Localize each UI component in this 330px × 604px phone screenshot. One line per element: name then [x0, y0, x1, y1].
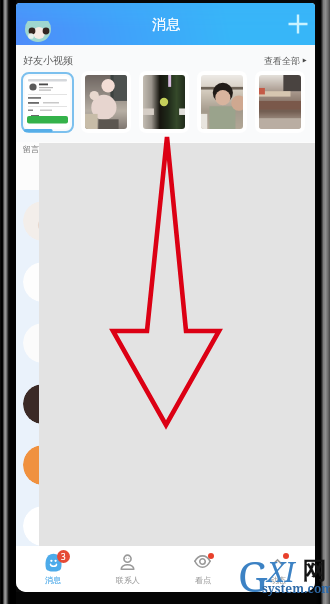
- button[interactable]: 3: [16, 546, 90, 592]
- button[interactable]: [16, 312, 315, 373]
- staticText: 查看全部: [264, 55, 300, 66]
- button[interactable]: [16, 373, 315, 434]
- staticText: 好友小视频: [23, 54, 73, 67]
- staticText: 网: [302, 556, 326, 586]
- staticText: 留言: [23, 144, 39, 154]
- staticText: 消息: [152, 16, 180, 34]
- button[interactable]: [16, 190, 315, 251]
- staticText: XI: [267, 553, 295, 590]
- staticText: system.com: [262, 580, 330, 596]
- button[interactable]: 看点: [165, 546, 240, 592]
- button[interactable]: Profile: [23, 7, 53, 37]
- button[interactable]: [139, 71, 189, 133]
- button[interactable]: [16, 495, 315, 556]
- staticText: 联系人: [116, 575, 140, 585]
- staticText: 动态: [270, 575, 286, 585]
- button[interactable]: [22, 71, 73, 134]
- staticText: G: [238, 547, 268, 604]
- staticText: 消息: [45, 575, 61, 585]
- button[interactable]: [255, 71, 305, 133]
- button[interactable]: [16, 434, 315, 495]
- button[interactable]: [81, 71, 131, 133]
- button[interactable]: Add: [283, 9, 313, 39]
- staticText: 3: [61, 551, 66, 562]
- button[interactable]: [16, 251, 315, 312]
- staticText: 看点: [195, 575, 211, 585]
- button[interactable]: 查看全部: [264, 55, 308, 66]
- button[interactable]: [197, 71, 247, 133]
- button[interactable]: 联系人: [90, 546, 165, 592]
- button[interactable]: 动态: [240, 546, 315, 592]
